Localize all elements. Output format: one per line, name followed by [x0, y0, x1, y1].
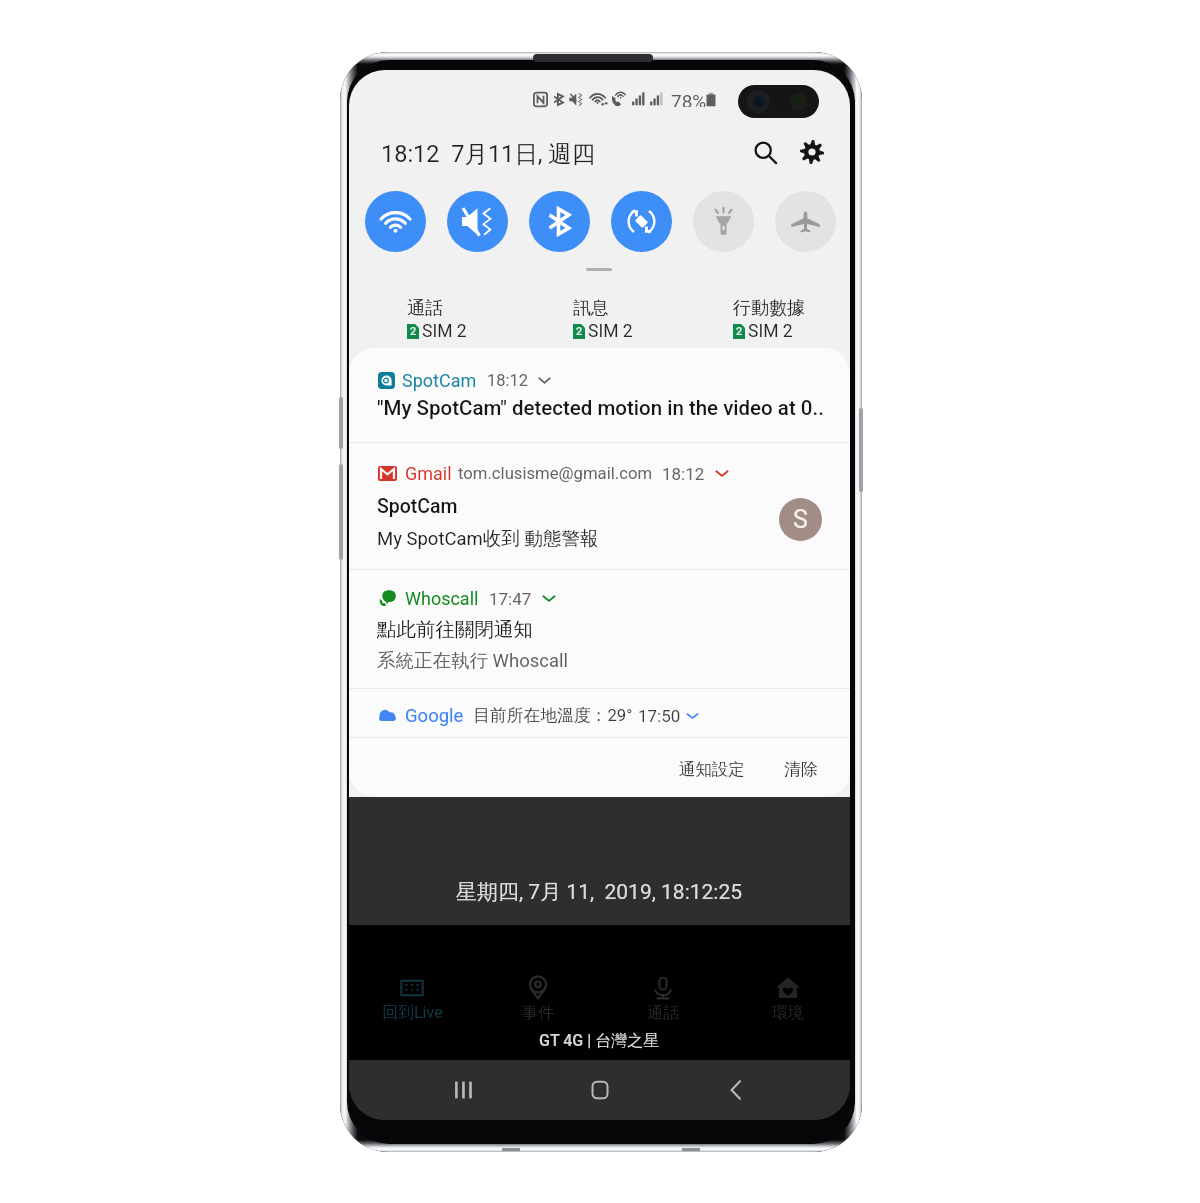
button[interactable]: 行動數據: [733, 297, 850, 343]
staticText: 事件: [522, 1003, 554, 1023]
staticText: Whoscall: [405, 588, 479, 609]
staticText: SpotCam: [402, 370, 477, 391]
staticText: 78%: [671, 90, 707, 107]
staticText: 環境: [772, 1003, 804, 1023]
staticText: 通知設定: [679, 759, 745, 780]
button[interactable]: Back: [713, 1067, 759, 1113]
button[interactable]: 回到Live: [349, 975, 475, 1023]
button[interactable]: Whoscall: [349, 570, 850, 688]
staticText: tom.clusisme@gmail.com: [458, 464, 653, 484]
staticText: Gmail: [405, 463, 452, 484]
button[interactable]: 通知設定: [667, 747, 757, 792]
staticText: My SpotCam收到 動態警報: [377, 527, 599, 550]
staticText: 2: [736, 325, 743, 338]
staticText: 18:12: [487, 371, 529, 390]
button[interactable]: Gmail: [349, 443, 850, 569]
button[interactable]: Bluetooth: [529, 191, 590, 252]
staticText: GT 4G | 台灣之星: [539, 1031, 660, 1051]
button[interactable]: Search: [743, 130, 787, 174]
button[interactable]: Home: [577, 1067, 623, 1113]
button[interactable]: 清除: [772, 747, 830, 792]
staticText: 通話: [407, 297, 443, 320]
staticText: 訊息: [573, 297, 609, 320]
staticText: 行動數據: [733, 297, 805, 320]
button[interactable]: Auto rotate: [611, 191, 672, 252]
button[interactable]: 事件: [475, 975, 600, 1023]
staticText: 17:50: [638, 706, 681, 726]
button[interactable]: Recents: [440, 1067, 486, 1113]
staticText: 2: [576, 325, 583, 338]
staticText: 2: [410, 325, 417, 338]
button[interactable]: Expand quick settings: [566, 258, 632, 280]
button[interactable]: Flight mode: [775, 191, 836, 252]
staticText: 18:12: [662, 464, 705, 484]
staticText: 星期四, 7月 11, 2019, 18:12:25: [456, 879, 743, 905]
button[interactable]: 訊息: [573, 297, 693, 343]
button[interactable]: 通話: [407, 297, 527, 343]
button[interactable]: Flashlight: [693, 191, 754, 252]
staticText: 清除: [784, 759, 818, 780]
button[interactable]: 通話: [600, 975, 725, 1023]
staticText: 通話: [647, 1003, 679, 1023]
staticText: 回到Live: [382, 1003, 443, 1023]
staticText: SpotCam: [377, 495, 458, 518]
button[interactable]: SpotCam: [349, 348, 850, 442]
staticText: 目前所在地溫度：29°: [473, 705, 633, 726]
staticText: S: [793, 505, 808, 534]
button[interactable]: Settings: [790, 130, 834, 174]
button[interactable]: Sound: [447, 191, 508, 252]
staticText: 點此前往關閉通知: [377, 617, 533, 642]
button[interactable]: 環境: [725, 975, 850, 1023]
staticText: SIM 2: [588, 321, 633, 342]
button[interactable]: Wi-Fi: [365, 191, 426, 252]
button[interactable]: Google: [349, 689, 850, 737]
staticText: 18:12 7月11日, 週四: [381, 139, 596, 169]
staticText: SIM 2: [422, 321, 467, 342]
staticText: SIM 2: [748, 321, 793, 342]
staticText: 17:47: [489, 589, 532, 609]
staticText: 系統正在執行 Whoscall: [377, 649, 569, 672]
staticText: Google: [405, 705, 464, 727]
staticText: "My SpotCam" detected motion in the vide…: [377, 396, 824, 420]
